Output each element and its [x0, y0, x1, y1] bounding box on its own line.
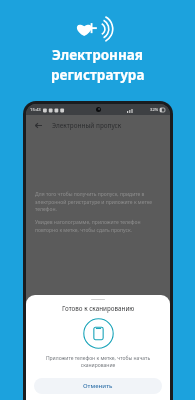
button[interactable]: Назад	[32, 119, 44, 131]
staticText: 15:43	[30, 107, 41, 113]
other: Логотип	[75, 18, 121, 40]
staticText: Электронная	[52, 46, 144, 64]
staticText: Электронный пропуск	[52, 121, 122, 130]
staticText: Для того чтобы получить пропуск, придите…	[35, 191, 161, 212]
staticText: Увидев наголограмме, приложите телефон п…	[35, 219, 161, 233]
staticText: 32%	[150, 107, 159, 113]
staticText: Отменить	[83, 382, 113, 390]
staticText: Готово к сканированию	[62, 304, 135, 312]
staticText: регистратура	[51, 66, 145, 84]
staticText: Приложите телефон к метке, чтобы начать …	[38, 355, 158, 369]
button[interactable]: Отменить	[34, 378, 162, 394]
